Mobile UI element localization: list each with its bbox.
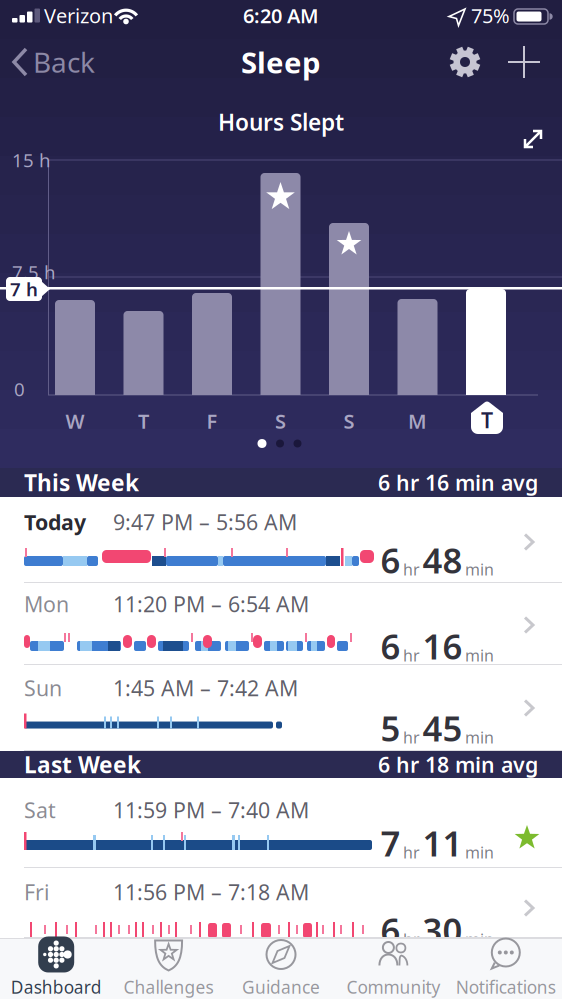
- staticText: F: [206, 408, 217, 434]
- button[interactable]: Dashboard: [0, 938, 112, 996]
- staticText: Challenges: [124, 975, 214, 998]
- button[interactable]: Guidance: [225, 938, 337, 996]
- staticText: 11:56 PM – 7:18 AM: [113, 878, 309, 906]
- button[interactable]: Mon: [0, 583, 562, 665]
- staticText: Verizon: [44, 2, 113, 29]
- staticText: 7.5 h: [12, 260, 56, 284]
- staticText: Fri: [24, 878, 50, 906]
- staticText: 30: [422, 907, 462, 953]
- staticText: Today: [24, 508, 86, 536]
- button[interactable]: Fri: [0, 868, 562, 938]
- staticText: 16: [422, 623, 462, 669]
- staticText: Back: [33, 43, 95, 81]
- staticText: hr: [403, 842, 420, 863]
- staticText: Dashboard: [11, 975, 102, 998]
- button[interactable]: Back: [0, 0, 120, 55]
- button[interactable]: Sun: [0, 665, 562, 751]
- staticText: 15 h: [12, 148, 51, 172]
- staticText: Sat: [24, 796, 56, 824]
- staticText: Sleep: [241, 42, 321, 81]
- staticText: min: [465, 559, 494, 580]
- staticText: 6 hr 16 min avg: [378, 468, 538, 497]
- staticText: min: [465, 929, 494, 950]
- button[interactable]: Sat: [0, 778, 562, 868]
- staticText: S: [275, 408, 286, 434]
- staticText: 6 hr 18 min avg: [378, 750, 538, 779]
- staticText: 6: [380, 623, 400, 669]
- staticText: 7: [380, 820, 400, 866]
- staticText: Guidance: [242, 975, 320, 998]
- staticText: 75%: [471, 2, 510, 29]
- staticText: Hours Slept: [218, 107, 344, 137]
- staticText: T: [481, 406, 493, 434]
- staticText: Mon: [24, 590, 69, 618]
- staticText: M: [408, 408, 427, 434]
- staticText: This Week: [24, 467, 139, 497]
- staticText: Last Week: [24, 749, 141, 779]
- staticText: 11: [422, 820, 462, 866]
- staticText: 11:20 PM – 6:54 AM: [113, 590, 309, 618]
- staticText: 7 h: [10, 277, 38, 301]
- button[interactable]: [502, 40, 546, 84]
- staticText: W: [65, 408, 84, 434]
- staticText: 9:47 PM – 5:56 AM: [113, 508, 297, 536]
- staticText: T: [138, 408, 149, 434]
- button[interactable]: Community: [337, 938, 450, 996]
- staticText: min: [465, 727, 494, 748]
- staticText: 11:59 PM – 7:40 AM: [113, 796, 309, 824]
- staticText: 0: [14, 377, 25, 401]
- staticText: 6: [380, 907, 400, 953]
- staticText: hr: [403, 559, 420, 580]
- staticText: hr: [403, 645, 420, 666]
- staticText: S: [343, 408, 354, 434]
- staticText: 48: [422, 537, 462, 583]
- staticText: 45: [422, 705, 462, 751]
- staticText: min: [465, 645, 494, 666]
- staticText: 5: [380, 705, 400, 751]
- staticText: Notifications: [456, 975, 556, 998]
- staticText: 1:45 AM – 7:42 AM: [113, 674, 298, 702]
- staticText: 6:20 AM: [243, 2, 319, 29]
- staticText: hr: [403, 929, 420, 950]
- button[interactable]: Challenges: [112, 938, 225, 996]
- staticText: hr: [403, 727, 420, 748]
- staticText: Community: [346, 975, 440, 998]
- button[interactable]: Today: [0, 497, 562, 583]
- staticText: 6: [380, 537, 400, 583]
- staticText: min: [465, 842, 494, 863]
- button[interactable]: [443, 40, 487, 84]
- button[interactable]: Notifications: [450, 938, 562, 996]
- button[interactable]: [515, 121, 551, 157]
- staticText: Sun: [24, 674, 62, 702]
